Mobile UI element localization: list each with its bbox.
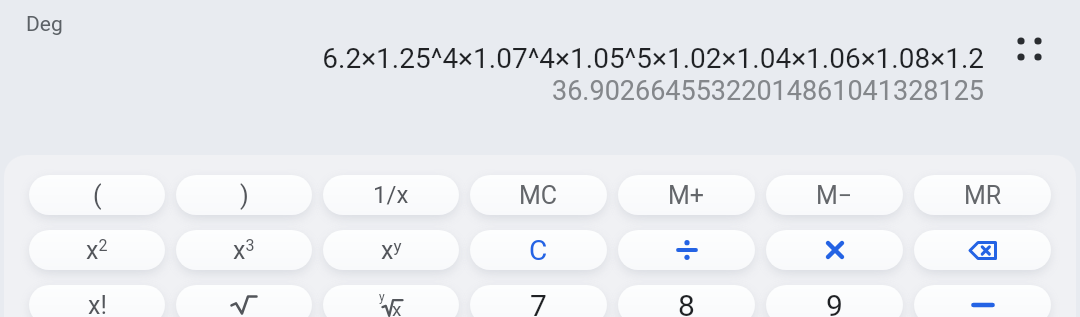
- button[interactable]: xy: [323, 230, 459, 270]
- button[interactable]: C: [470, 230, 607, 270]
- button[interactable]: Deg: [26, 12, 63, 37]
- button[interactable]: x!: [29, 285, 165, 317]
- button[interactable]: [766, 230, 903, 270]
- staticText: 1/x: [373, 181, 409, 209]
- staticText: x: [392, 298, 402, 317]
- staticText: 7: [530, 288, 547, 317]
- button[interactable]: x3: [176, 230, 312, 270]
- staticText: x3: [233, 236, 255, 265]
- button[interactable]: 8: [618, 285, 755, 317]
- button[interactable]: M−: [766, 175, 903, 215]
- button[interactable]: [914, 285, 1051, 317]
- staticText: 9: [826, 288, 843, 317]
- button[interactable]: [618, 230, 755, 270]
- staticText: C: [529, 234, 548, 267]
- staticText: 8: [678, 288, 695, 317]
- button[interactable]: M+: [618, 175, 755, 215]
- button[interactable]: (: [29, 175, 165, 215]
- staticText: xy: [381, 236, 402, 265]
- staticText: 6.2×1.25^4×1.07^4×1.05^5×1.02×1.04×1.06×…: [0, 42, 984, 75]
- staticText: 36.90266455322014861041328125: [0, 75, 984, 107]
- button[interactable]: 9: [766, 285, 903, 317]
- staticText: ): [240, 181, 249, 210]
- button[interactable]: [176, 285, 312, 317]
- staticText: (: [93, 181, 102, 210]
- button[interactable]: MC: [470, 175, 607, 215]
- staticText: x!: [88, 291, 107, 317]
- staticText: MR: [964, 181, 1002, 210]
- button[interactable]: [914, 230, 1051, 270]
- button[interactable]: x2: [29, 230, 165, 270]
- button[interactable]: 1/x: [323, 175, 459, 215]
- staticText: M−: [816, 181, 853, 210]
- button[interactable]: y: [323, 285, 459, 317]
- staticText: y: [379, 290, 385, 304]
- button[interactable]: 7: [470, 285, 607, 317]
- staticText: M+: [668, 181, 705, 210]
- button[interactable]: MR: [914, 175, 1051, 215]
- staticText: MC: [519, 181, 558, 210]
- button[interactable]: [1009, 29, 1050, 69]
- staticText: x2: [86, 236, 108, 265]
- button[interactable]: ): [176, 175, 312, 215]
